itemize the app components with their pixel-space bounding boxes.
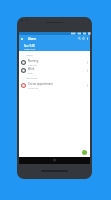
staticText: 7:30 AM bbox=[28, 64, 37, 66]
button[interactable]: Row options bbox=[85, 82, 89, 89]
staticText: Alarm bbox=[28, 37, 37, 41]
staticText: 10:30 AM bbox=[28, 87, 39, 89]
button[interactable]: Search bbox=[77, 35, 81, 42]
button[interactable]: Doctor appointment bbox=[19, 82, 90, 89]
button[interactable]: Timer bbox=[81, 35, 85, 42]
staticText: Morning bbox=[28, 59, 39, 63]
button[interactable]: Work bbox=[19, 67, 90, 74]
button[interactable]: Morning bbox=[19, 59, 90, 66]
button[interactable]: Navigation menu bbox=[19, 35, 25, 42]
staticText: Today bbox=[26, 53, 33, 56]
staticText: Doctor appointment bbox=[28, 82, 53, 86]
button[interactable]: More options bbox=[85, 35, 89, 42]
button[interactable]: Row options bbox=[85, 67, 89, 74]
button[interactable]: Add alarm bbox=[82, 150, 87, 155]
staticText: Tomorrow bbox=[26, 76, 38, 79]
staticText: Work bbox=[28, 67, 35, 71]
button[interactable]: Row options bbox=[85, 59, 89, 66]
staticText: Sun 9:30 bbox=[24, 44, 35, 48]
staticText: 8:45 bbox=[28, 72, 33, 74]
staticText: Next 7:30 bbox=[24, 47, 36, 50]
